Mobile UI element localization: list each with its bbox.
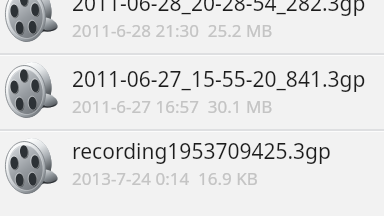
- staticText: 2011-6-28 21:30 25.2 MB: [72, 19, 273, 42]
- staticText: 2011-6-27 16:57 30.1 MB: [72, 95, 273, 118]
- button[interactable]: 2011-06-28_20-28-54_282.3gp: [0, 0, 384, 56]
- staticText: 2013-7-24 0:14 16.9 KB: [72, 167, 258, 190]
- staticText: 2011-06-28_20-28-54_282.3gp: [72, 0, 366, 18]
- button[interactable]: 2011-06-27_15-55-20_841.3gp: [0, 56, 384, 132]
- staticText: 2011-06-27_15-55-20_841.3gp: [72, 65, 366, 94]
- staticText: recording1953709425.3gp: [72, 137, 331, 166]
- button[interactable]: recording1953709425.3gp: [0, 132, 384, 196]
